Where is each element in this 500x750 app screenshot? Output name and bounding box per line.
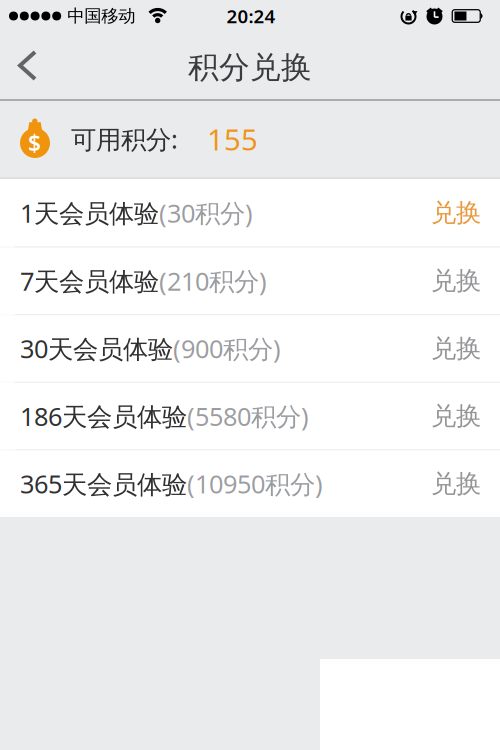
button[interactable] <box>0 33 38 98</box>
button[interactable]: 365天会员体验 <box>0 450 500 517</box>
button[interactable]: 1天会员体验 <box>0 179 500 247</box>
button[interactable]: 兑换 <box>431 333 481 364</box>
staticText: 365天会员体验 <box>20 467 187 500</box>
button[interactable]: 兑换 <box>431 468 481 499</box>
staticText: 兑换 <box>431 468 481 499</box>
staticText: 20:24 <box>226 4 275 28</box>
button[interactable]: 兑换 <box>431 400 481 432</box>
staticText: 1天会员体验 <box>20 196 159 230</box>
staticText: (210积分) <box>159 264 267 298</box>
staticText: 7天会员体验 <box>20 264 159 298</box>
staticText: 186天会员体验 <box>20 399 187 433</box>
staticText: (5580积分) <box>187 399 309 433</box>
button[interactable]: 30天会员体验 <box>0 315 500 382</box>
staticText: $ <box>28 128 41 158</box>
button[interactable]: 兑换 <box>431 197 481 228</box>
staticText: 兑换 <box>431 400 481 432</box>
staticText: (900积分) <box>173 332 281 365</box>
staticText: 中国移动 <box>67 5 135 27</box>
button[interactable]: 7天会员体验 <box>0 248 500 314</box>
staticText: (30积分) <box>159 196 253 230</box>
button[interactable]: 186天会员体验 <box>0 383 500 449</box>
staticText: 积分兑换 <box>188 49 312 86</box>
staticText: 兑换 <box>431 265 481 296</box>
staticText: 可用积分: <box>71 122 178 156</box>
staticText: 30天会员体验 <box>20 332 173 365</box>
staticText: 兑换 <box>431 333 481 364</box>
staticText: (10950积分) <box>187 467 323 500</box>
staticText: 兑换 <box>431 197 481 228</box>
staticText: 155 <box>207 119 258 158</box>
button[interactable]: 兑换 <box>431 265 481 296</box>
